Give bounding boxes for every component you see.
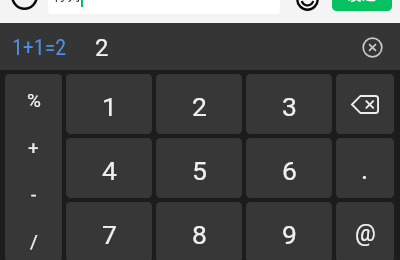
- staticText: .: [361, 154, 369, 186]
- button[interactable]: Close suggestions: [362, 37, 383, 58]
- staticText: 6: [282, 155, 297, 186]
- staticText: 7: [102, 219, 117, 250]
- staticText: 2: [192, 91, 207, 122]
- button[interactable]: 你好: [48, 0, 280, 14]
- button[interactable]: 2: [156, 74, 242, 134]
- staticText: 3: [282, 91, 297, 122]
- staticText: 9: [282, 219, 297, 250]
- staticText: 发送: [348, 0, 376, 5]
- button[interactable]: %: [5, 74, 62, 260]
- button[interactable]: 1: [66, 74, 152, 134]
- button[interactable]: 5: [156, 138, 242, 198]
- button[interactable]: 3: [246, 74, 332, 134]
- staticText: 5: [192, 155, 207, 186]
- button[interactable]: Backspace: [336, 74, 394, 134]
- staticText: 你好: [53, 0, 83, 5]
- staticText: %: [27, 89, 41, 111]
- staticText: 4: [102, 155, 117, 186]
- staticText: @: [355, 220, 376, 247]
- button[interactable]: 8: [156, 202, 242, 260]
- button[interactable]: 发送: [332, 0, 392, 11]
- button[interactable]: 6: [246, 138, 332, 198]
- staticText: 2: [95, 34, 109, 62]
- staticText: 8: [192, 219, 207, 250]
- staticText: 1+1=2: [12, 35, 67, 61]
- button[interactable]: 2: [85, 23, 99, 70]
- button[interactable]: 7: [66, 202, 152, 260]
- button[interactable]: 4: [66, 138, 152, 198]
- staticText: 1: [102, 91, 117, 122]
- staticText: +: [28, 136, 39, 158]
- button[interactable]: Emoji: [296, 0, 319, 11]
- button[interactable]: @: [336, 202, 394, 260]
- staticText: /: [30, 230, 38, 252]
- button[interactable]: 1+1=2: [4, 23, 59, 70]
- button[interactable]: .: [336, 138, 394, 198]
- staticText: -: [31, 183, 37, 205]
- button[interactable]: 9: [246, 202, 332, 260]
- button[interactable]: Voice input: [11, 0, 38, 10]
